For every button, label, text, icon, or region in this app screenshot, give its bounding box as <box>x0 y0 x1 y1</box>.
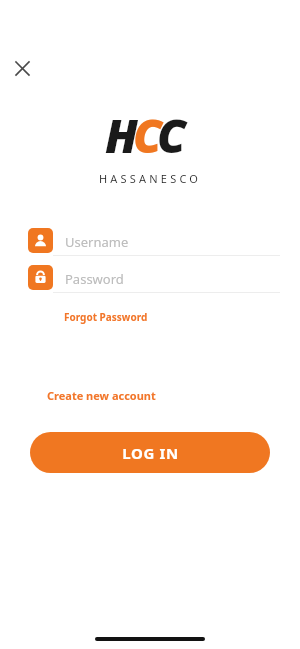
button[interactable]: Forgot Password <box>62 308 150 326</box>
button[interactable]: Create new account <box>45 386 158 405</box>
button[interactable]: Password <box>28 265 280 293</box>
staticText: C <box>133 104 162 167</box>
staticText: HASSANESCO <box>99 171 202 186</box>
staticText: Password <box>65 270 124 288</box>
button[interactable]: LOG IN <box>30 432 270 473</box>
staticText: Username <box>65 233 129 251</box>
staticText: C <box>157 104 186 167</box>
staticText: LOG IN <box>122 443 179 463</box>
button[interactable]: Username <box>28 228 280 256</box>
staticText: H <box>105 104 138 167</box>
staticText: Create new account <box>47 388 156 403</box>
button[interactable]: Close <box>8 54 36 82</box>
staticText: Forgot Password <box>64 310 148 324</box>
